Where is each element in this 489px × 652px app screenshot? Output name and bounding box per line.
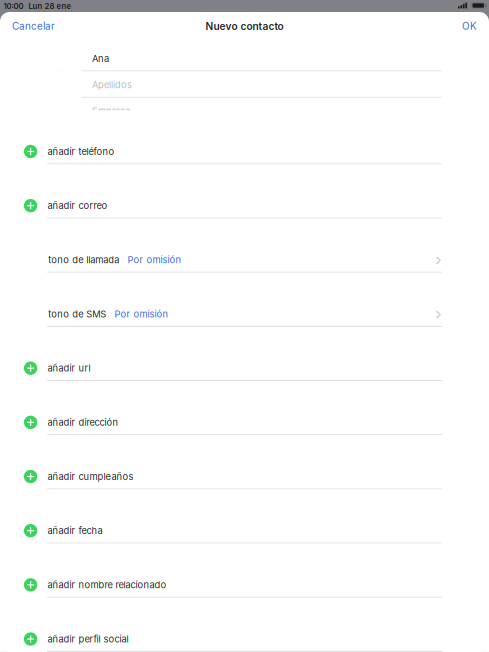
button[interactable]: OK bbox=[459, 12, 480, 40]
button[interactable]: añadir dirección bbox=[0, 381, 489, 435]
button[interactable]: tono de llamada bbox=[0, 219, 489, 273]
staticText: Ana bbox=[92, 53, 109, 64]
staticText: añadir teléfono bbox=[48, 146, 115, 157]
staticText: Lun 28 ene bbox=[28, 1, 71, 11]
button[interactable]: añadir correo bbox=[0, 164, 489, 219]
staticText: añadir nombre relacionado bbox=[48, 579, 167, 590]
staticText: 10:00 bbox=[4, 1, 24, 11]
staticText: tono de SMS bbox=[48, 308, 106, 320]
button[interactable]: tono de SMS bbox=[0, 273, 489, 327]
staticText: añadir fecha bbox=[48, 525, 103, 536]
staticText: Por omisión bbox=[127, 254, 181, 265]
staticText: Nuevo contacto bbox=[205, 20, 283, 32]
staticText: Por omisión bbox=[114, 308, 168, 320]
staticText: añadir cumpleaños bbox=[48, 471, 134, 482]
staticText: tono de llamada bbox=[48, 254, 119, 265]
staticText: añadir url bbox=[48, 362, 91, 374]
staticText: añadir dirección bbox=[48, 417, 119, 428]
staticText: OK bbox=[462, 20, 477, 32]
button[interactable]: Cancelar bbox=[9, 12, 58, 40]
button[interactable]: añadir nombre relacionado bbox=[0, 544, 489, 598]
staticText: añadir correo bbox=[48, 200, 108, 211]
staticText: Cancelar bbox=[12, 20, 55, 32]
button[interactable]: añadir fecha bbox=[0, 489, 489, 544]
button[interactable]: añadir teléfono bbox=[0, 110, 489, 164]
button[interactable]: Ana bbox=[0, 45, 489, 71]
staticText: añadir perfil social bbox=[48, 633, 129, 645]
staticText: Apellidos bbox=[92, 79, 132, 90]
button[interactable]: Apellidos bbox=[0, 71, 489, 98]
button[interactable]: añadir perfil social bbox=[0, 598, 489, 652]
button[interactable]: añadir url bbox=[0, 327, 489, 381]
button[interactable]: añadir cumpleaños bbox=[0, 435, 489, 489]
staticText: Empresa bbox=[92, 105, 130, 117]
